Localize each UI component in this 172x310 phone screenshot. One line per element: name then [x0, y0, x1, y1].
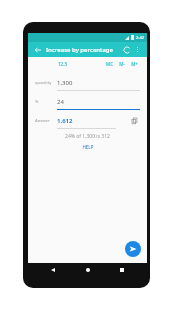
button[interactable]: More options [132, 44, 143, 55]
staticText: 24 [57, 98, 140, 106]
staticText: 12.5 [58, 61, 67, 67]
button[interactable]: MC [103, 61, 116, 67]
staticText: quantity [35, 80, 52, 86]
staticText: Answer [35, 118, 50, 124]
staticText: M+ [131, 61, 138, 67]
staticText: % [35, 99, 39, 105]
button[interactable]: 12.5 [56, 61, 69, 67]
button[interactable]: M- [116, 61, 128, 67]
button[interactable]: Send [125, 241, 141, 257]
staticText: HELP [82, 144, 94, 150]
button[interactable]: Navigate up [32, 44, 43, 55]
staticText: 24% of 1,300 is 312 [28, 133, 147, 140]
staticText: Increase by percentage [46, 46, 121, 54]
button[interactable]: Home [78, 263, 98, 277]
staticText: 1,612 [57, 117, 130, 125]
button[interactable]: M+ [128, 61, 141, 67]
button[interactable]: Back [43, 263, 63, 277]
staticText: MC [106, 61, 113, 67]
staticText: 2:42 [136, 35, 144, 40]
button[interactable]: Recents [112, 263, 132, 277]
staticText: 1,300 [57, 79, 140, 87]
button[interactable]: HELP [28, 144, 147, 150]
button[interactable]: Copy answer [130, 116, 140, 126]
button[interactable]: Reset [121, 44, 132, 55]
staticText: M- [119, 61, 125, 67]
